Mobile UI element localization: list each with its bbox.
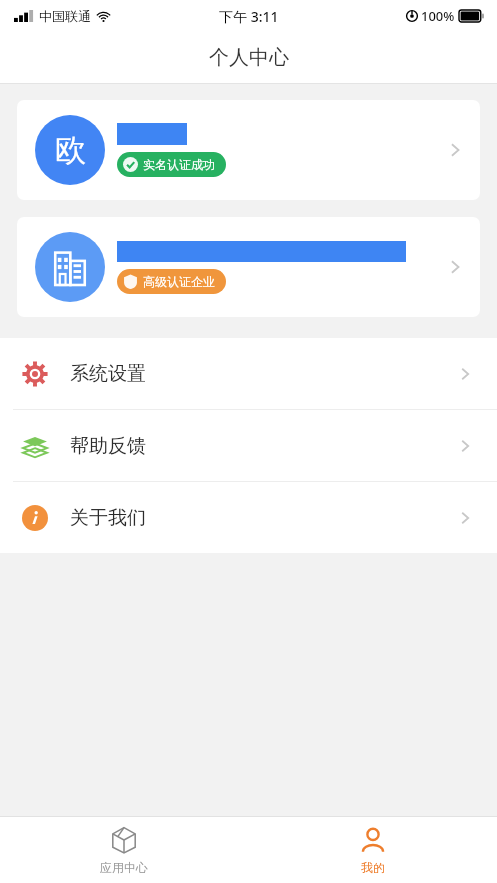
- staticText: 下午 3:11: [219, 7, 279, 26]
- staticText: 高级认证企业: [143, 274, 215, 289]
- button[interactable]: 系统设置: [0, 338, 497, 409]
- staticText: 中国联通: [39, 8, 91, 24]
- staticText: 我的: [361, 860, 385, 875]
- button[interactable]: 关于我们: [0, 482, 497, 553]
- button[interactable]: 我的: [248, 817, 497, 883]
- staticText: 系统设置: [70, 362, 146, 386]
- staticText: 欧: [55, 131, 86, 170]
- staticText: 100%: [421, 7, 455, 25]
- button[interactable]: 应用中心: [0, 817, 248, 883]
- staticText: 关于我们: [70, 506, 146, 530]
- button[interactable]: 帮助反馈: [0, 410, 497, 481]
- button[interactable]: 高级认证企业: [17, 217, 480, 317]
- staticText: 帮助反馈: [70, 434, 146, 458]
- staticText: 个人中心: [209, 45, 289, 70]
- staticText: 实名认证成功: [143, 157, 215, 172]
- staticText: 应用中心: [100, 860, 148, 875]
- button[interactable]: 欧: [17, 100, 480, 200]
